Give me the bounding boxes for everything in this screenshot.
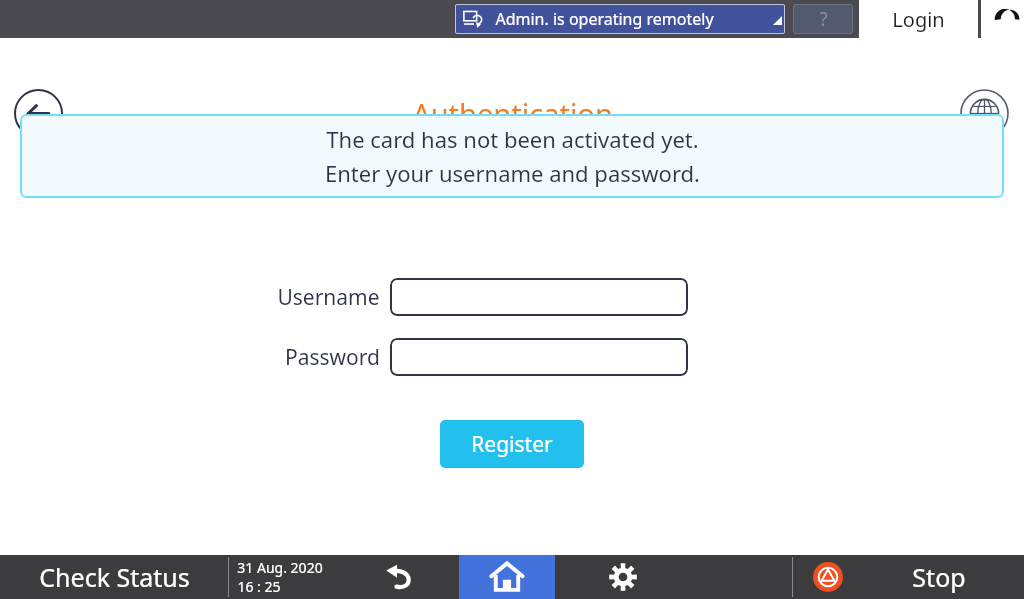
button[interactable]: Help: [793, 4, 853, 34]
staticText: Password: [285, 343, 380, 372]
staticText: 31 Aug. 2020: [237, 558, 323, 577]
staticText: Register: [471, 430, 553, 459]
button[interactable]: [390, 278, 688, 316]
button[interactable]: Check Status: [0, 555, 228, 599]
button[interactable]: Back: [339, 555, 459, 599]
staticText: Stop: [912, 560, 966, 594]
staticText: ?: [819, 6, 828, 32]
button[interactable]: Settings: [555, 555, 691, 599]
button[interactable]: Sleep mode: [981, 0, 1024, 38]
button[interactable]: Back: [14, 89, 63, 138]
button[interactable]: Register: [440, 420, 584, 468]
staticText: Authentication: [412, 94, 613, 133]
button[interactable]: Language: [960, 89, 1009, 138]
button[interactable]: [390, 338, 688, 376]
button[interactable]: Login: [859, 0, 978, 38]
staticText: Enter your username and password.: [325, 158, 700, 188]
staticText: Admin. is operating remotely: [495, 8, 714, 30]
button[interactable]: Admin. is operating remotely: [455, 4, 785, 34]
button[interactable]: Home: [459, 555, 555, 599]
staticText: Check Status: [39, 560, 190, 594]
staticText: Login: [892, 6, 945, 33]
staticText: The card has not been activated yet.: [326, 124, 699, 154]
staticText: 16 : 25: [237, 577, 281, 596]
button[interactable]: Stop: [793, 555, 1024, 599]
staticText: Username: [277, 283, 380, 312]
